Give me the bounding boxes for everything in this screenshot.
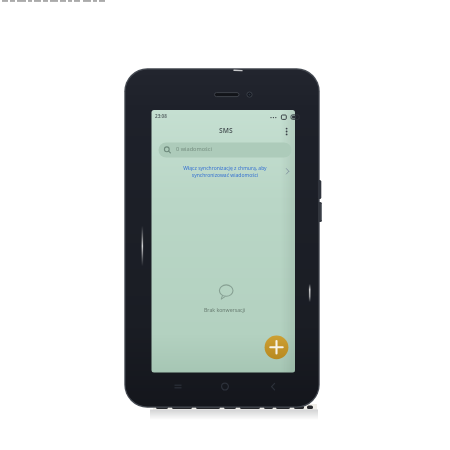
staticText: 23:08 xyxy=(155,113,167,119)
button[interactable] xyxy=(265,336,289,360)
button[interactable]: 0 wiadomości xyxy=(159,143,292,158)
button[interactable] xyxy=(215,378,235,394)
button[interactable] xyxy=(263,378,283,394)
button[interactable] xyxy=(281,124,292,136)
button[interactable] xyxy=(168,378,188,394)
staticText: Brak konwersacji xyxy=(204,306,246,313)
staticText: SMS xyxy=(219,126,233,135)
staticText: 0 wiadomości xyxy=(176,145,212,153)
staticText: Włącz synchronizację z chmurą, aby synch… xyxy=(183,165,267,178)
button[interactable]: Włącz synchronizację z chmurą, aby synch… xyxy=(160,163,290,180)
